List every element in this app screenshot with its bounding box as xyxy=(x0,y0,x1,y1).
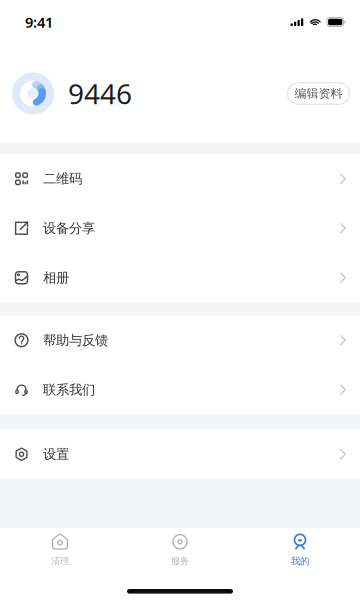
button[interactable]: 联系我们 xyxy=(0,365,360,414)
button[interactable]: 设备分享 xyxy=(0,203,360,253)
staticText: 联系我们 xyxy=(43,382,95,398)
staticText: 清理 xyxy=(51,555,69,567)
staticText: 9446 xyxy=(68,75,132,112)
button[interactable]: 二维码 xyxy=(0,154,360,203)
staticText: 我的 xyxy=(291,555,309,567)
button[interactable]: 我的 xyxy=(240,527,360,572)
staticText: 服务 xyxy=(171,555,189,567)
button[interactable]: Profile photo xyxy=(12,72,54,114)
staticText: 设备分享 xyxy=(43,220,95,236)
staticText: 9:41 xyxy=(25,12,53,32)
button[interactable]: 帮助与反馈 xyxy=(0,315,360,365)
button[interactable]: 清理 xyxy=(0,527,120,572)
button[interactable]: 相册 xyxy=(0,253,360,302)
button[interactable]: 编辑资料 xyxy=(287,82,350,105)
staticText: 编辑资料 xyxy=(294,86,342,101)
button[interactable]: 设置 xyxy=(0,429,360,479)
staticText: 相册 xyxy=(43,270,69,286)
staticText: 二维码 xyxy=(43,171,82,187)
staticText: 设置 xyxy=(43,446,69,462)
button[interactable]: 服务 xyxy=(120,527,240,572)
staticText: 帮助与反馈 xyxy=(43,332,108,348)
